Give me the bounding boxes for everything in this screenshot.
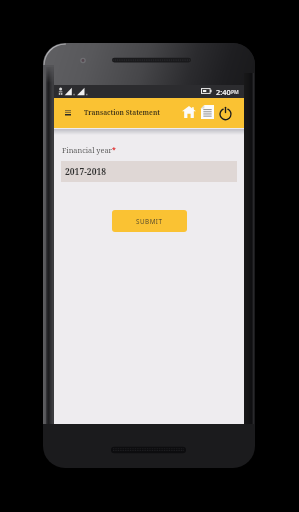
staticText: Transaction Statement	[84, 108, 160, 117]
staticText: Financial year	[62, 145, 112, 155]
staticText: SUBMIT	[136, 217, 163, 226]
button[interactable]: Logout	[216, 103, 234, 121]
staticText: 2:40	[216, 87, 231, 97]
staticText: *	[112, 145, 116, 155]
staticText: PM	[231, 89, 239, 96]
button[interactable]: 2017-2018	[61, 161, 237, 182]
button[interactable]: Open navigation menu	[60, 105, 76, 121]
button[interactable]: SUBMIT	[112, 210, 187, 232]
button[interactable]: Home	[180, 103, 198, 121]
staticText: 2017-2018	[65, 166, 107, 178]
button[interactable]: Statements	[198, 103, 216, 121]
